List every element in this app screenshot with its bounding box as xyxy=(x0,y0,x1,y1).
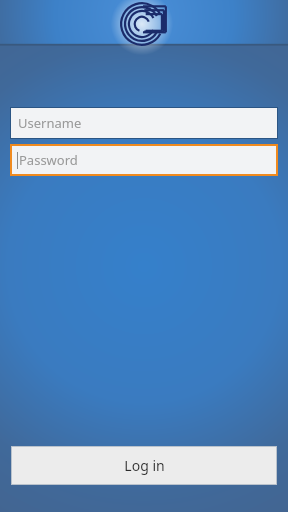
button[interactable]: Password xyxy=(10,144,278,176)
staticText: Password xyxy=(19,151,78,169)
button[interactable]: Log in xyxy=(11,446,277,485)
button[interactable]: Username xyxy=(10,107,278,139)
other: App logo xyxy=(118,0,170,50)
staticText: Username xyxy=(18,114,82,132)
staticText: Log in xyxy=(124,456,165,475)
